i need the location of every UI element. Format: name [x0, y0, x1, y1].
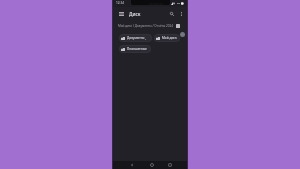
button[interactable]: Switch view mode — [174, 22, 182, 30]
button[interactable]: Home — [147, 161, 156, 169]
button[interactable]: Search — [167, 9, 176, 18]
button[interactable]: Документы , — [119, 34, 152, 42]
staticText: Мой диск / Документы / Отчёты 2024 — [118, 24, 174, 28]
button[interactable]: More options — [177, 9, 186, 18]
button[interactable]: Back — [127, 161, 136, 169]
staticText: Мой диск — [162, 36, 177, 40]
staticText: обновлено — [149, 2, 163, 5]
button[interactable]: Планшетные — [119, 45, 151, 53]
button[interactable]: Recent apps — [165, 161, 174, 169]
button[interactable]: Open navigation drawer — [117, 9, 126, 18]
button[interactable]: Мой диск — [154, 34, 180, 42]
staticText: 12:34 — [116, 1, 125, 5]
staticText: Документы , — [127, 36, 146, 40]
staticText: Диск — [129, 11, 141, 17]
button[interactable]: Account — [180, 32, 185, 37]
staticText: Планшетные — [127, 47, 147, 51]
